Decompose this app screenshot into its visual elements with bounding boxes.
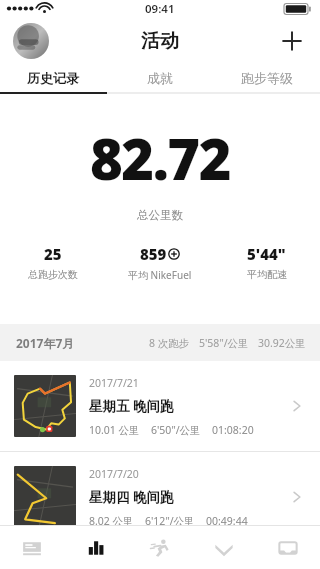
button[interactable]: 成就 — [106, 64, 213, 92]
staticText: 5'58"/公里 — [199, 336, 249, 350]
staticText: 8.02 公里 — [89, 514, 134, 528]
staticText: 6'12"/公里 — [145, 514, 195, 528]
button[interactable]: 添加 — [272, 21, 312, 61]
staticText: 6'50"/公里 — [151, 423, 201, 437]
staticText: 总公里数 — [137, 208, 183, 222]
button[interactable]: 跑步 — [128, 526, 192, 569]
staticText: 82.72 — [90, 120, 230, 196]
staticText: 星期四 晚间跑 — [89, 488, 174, 506]
staticText: 5'44" — [247, 244, 286, 264]
button[interactable]: 收件箱 — [256, 526, 320, 569]
staticText: 00:49:44 — [206, 514, 248, 528]
staticText: 2017/7/21 — [89, 376, 139, 390]
button[interactable]: 俱乐部 — [192, 526, 256, 569]
staticText: 30.92公里 — [258, 336, 306, 350]
staticText: 星期五 晚间跑 — [89, 397, 174, 415]
button[interactable]: 活动 — [64, 526, 128, 569]
staticText: 跑步等级 — [241, 70, 293, 86]
staticText: 01:08:20 — [212, 423, 254, 437]
staticText: 10.01 公里 — [89, 423, 140, 437]
staticText: 2017/7/20 — [89, 467, 139, 481]
button[interactable]: 历史记录 — [0, 64, 106, 92]
button[interactable]: 2017年7月 — [0, 324, 320, 361]
staticText: 平均配速 — [247, 268, 287, 281]
staticText: 859 — [140, 244, 167, 264]
staticText: 历史记录 — [27, 70, 79, 86]
button[interactable]: 动态 — [0, 526, 64, 569]
staticText: 25 — [44, 244, 62, 264]
button[interactable]: 2017/7/20 — [0, 452, 320, 542]
button[interactable]: 2017/7/21 — [0, 361, 320, 451]
staticText: 平均 NikeFuel — [128, 268, 192, 282]
staticText: 09:41 — [145, 1, 175, 17]
staticText: 活动 — [141, 29, 179, 53]
staticText: 8 次跑步 — [149, 336, 190, 350]
staticText: 2017年7月 — [16, 335, 75, 351]
button[interactable]: 跑步等级 — [213, 64, 320, 92]
button[interactable]: 个人资料 — [13, 23, 49, 59]
staticText: 成就 — [147, 70, 173, 86]
staticText: 总跑步次数 — [28, 268, 78, 281]
